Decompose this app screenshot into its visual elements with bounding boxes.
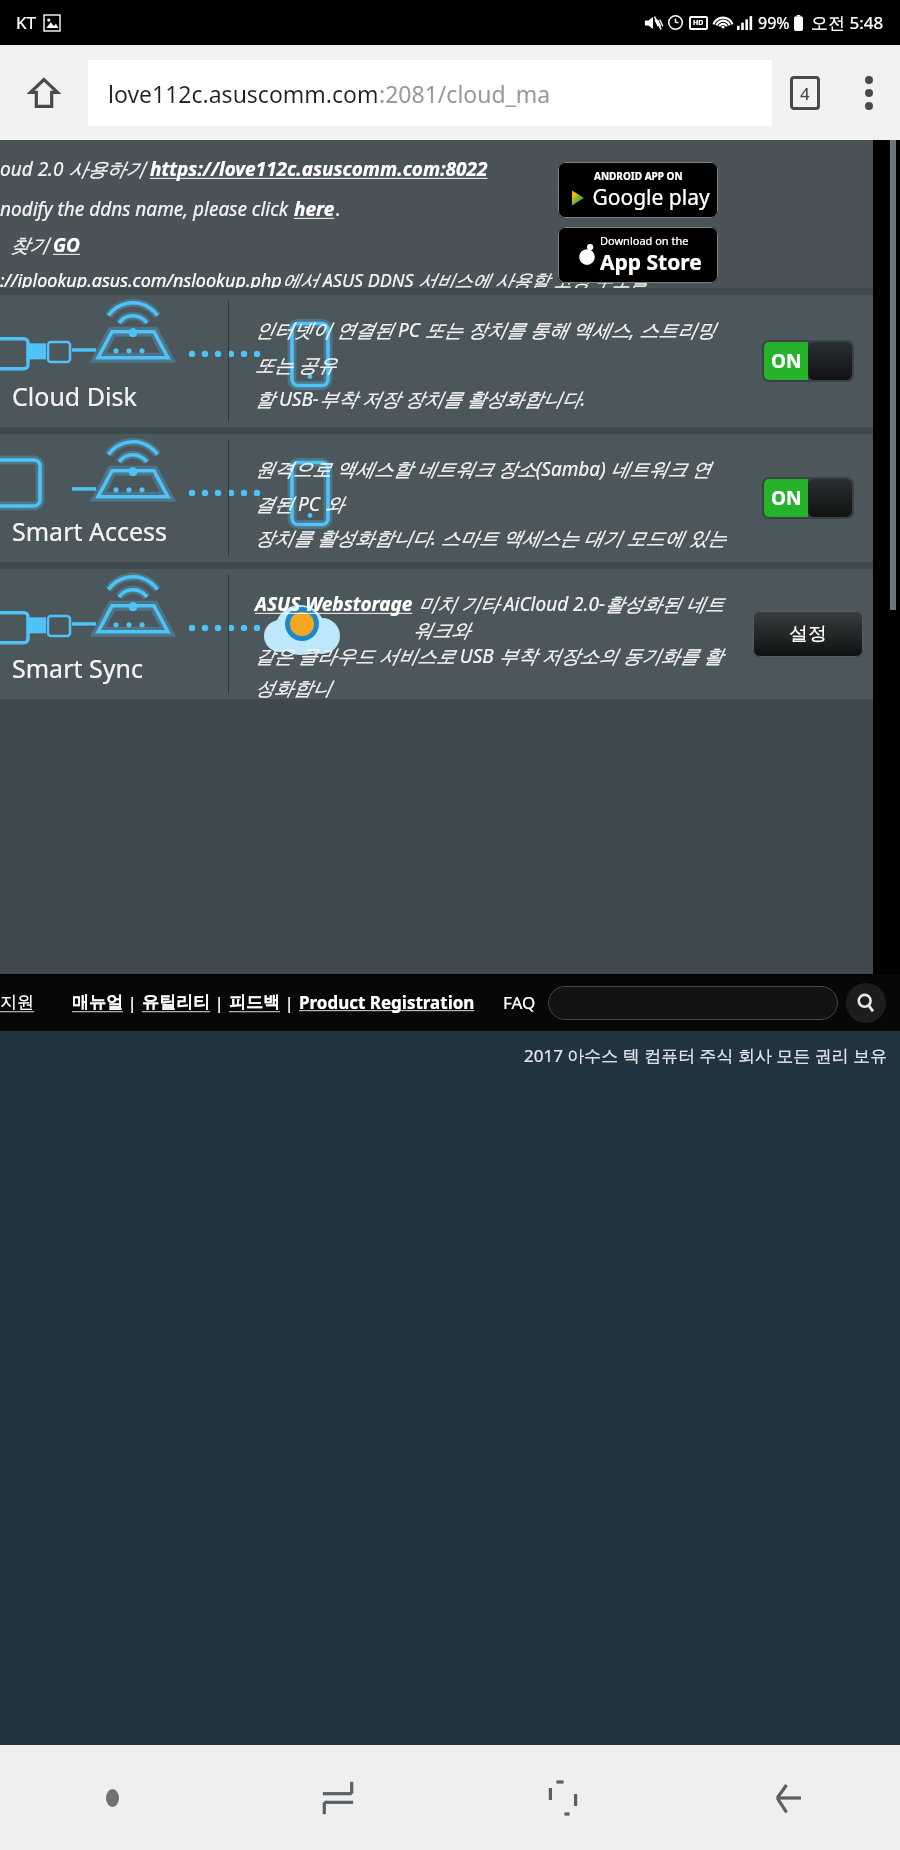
staticText: ANDROID APP ON xyxy=(594,169,683,183)
button[interactable]: Android app on Google Play xyxy=(558,162,718,218)
button[interactable]: Home xyxy=(0,45,88,140)
button[interactable]: Smart Sync xyxy=(0,569,873,699)
staticText: ://iplookup.asus.com/nslookup.php xyxy=(0,268,282,288)
staticText: GO xyxy=(53,232,80,258)
staticText: Download on the xyxy=(600,233,689,248)
button[interactable]: Product Registration xyxy=(299,991,475,1014)
button[interactable]: 설정 xyxy=(753,611,863,657)
staticText: 2017 아수스 텍 컴퓨터 주식 회사 모든 권리 보유 xyxy=(524,1044,888,1067)
staticText: 99% xyxy=(758,12,790,34)
button[interactable]: Toggle on xyxy=(762,477,854,519)
staticText: KT xyxy=(16,11,36,34)
staticText: Smart Sync xyxy=(12,651,143,685)
staticText: love112c.asuscomm.com xyxy=(108,78,379,109)
staticText: 지원 xyxy=(0,992,34,1013)
button[interactable]: Menu indicator xyxy=(0,1745,225,1850)
button[interactable]: Tabs: 4 xyxy=(772,45,838,140)
staticText: 설정 xyxy=(789,622,827,646)
staticText: . xyxy=(335,196,341,222)
staticText: Google play xyxy=(587,183,710,212)
staticText: :2081/cloud_ma xyxy=(379,78,551,109)
button[interactable]: Recents xyxy=(225,1745,450,1850)
button[interactable]: Search FAQ xyxy=(548,986,838,1020)
staticText: FAQ xyxy=(503,991,536,1014)
staticText: App Store xyxy=(600,248,702,277)
staticText: oud 2.0 사용하기 xyxy=(0,156,150,182)
staticText: 원격으로 액세스할 네트워크 장소(Samba) 네트워크 연결된 PC 와 장… xyxy=(255,456,727,562)
button[interactable]: More options xyxy=(838,45,900,140)
staticText: | xyxy=(210,991,229,1014)
staticText: 같은 클라우드 서비스로 USB 부착 저장소의 동기화를 활성화합니 다. xyxy=(255,643,727,699)
staticText: here xyxy=(294,196,335,222)
button[interactable]: Home xyxy=(450,1745,675,1850)
staticText: https://love112c.asuscomm.com:8022 xyxy=(150,156,488,182)
staticText: nodify the ddns name, please click xyxy=(0,196,294,222)
staticText: 미치 기타 AiCloud 2.0-활성화된 네트워크와 xyxy=(413,591,727,643)
staticText: | xyxy=(280,991,299,1014)
staticText: | xyxy=(123,991,142,1014)
staticText: 인터넷이 연결된 PC 또는 장치를 통해 액세스, 스트리밍 또는 공유 할 … xyxy=(255,317,727,412)
staticText: Smart Access xyxy=(12,514,168,548)
staticText: 오전 5:48 xyxy=(811,11,884,34)
button[interactable]: Search xyxy=(846,983,886,1023)
staticText: ON xyxy=(771,485,802,511)
button[interactable]: Back xyxy=(675,1745,900,1850)
button[interactable]: Cloud Disk xyxy=(0,295,873,427)
staticText: Cloud Disk xyxy=(12,379,137,413)
button[interactable]: love112c.asuscomm.com xyxy=(88,60,772,126)
staticText: 찾기 xyxy=(10,232,53,258)
button[interactable]: Smart Access xyxy=(0,434,873,562)
button[interactable]: Download on the App Store xyxy=(558,227,718,283)
staticText: ON xyxy=(771,348,802,374)
button[interactable]: 유틸리티 xyxy=(142,992,210,1013)
staticText: 에서 ASUS DDNS 서비스에 사용할 고정 주소를 xyxy=(282,268,649,288)
button[interactable]: Toggle on xyxy=(762,340,854,382)
button[interactable]: 매뉴얼 xyxy=(72,992,123,1013)
staticText: ASUS Webstorage xyxy=(255,591,413,617)
staticText: 4 xyxy=(800,82,810,105)
button[interactable]: 피드백 xyxy=(229,992,280,1013)
staticText: HD xyxy=(693,18,704,28)
